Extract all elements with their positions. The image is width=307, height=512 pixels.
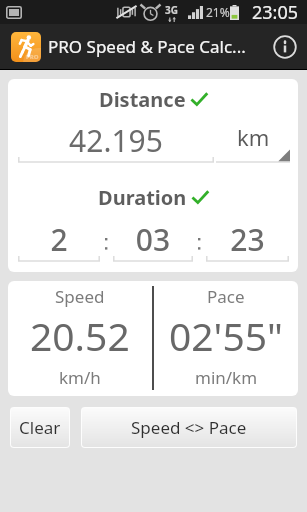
staticText: Speed: [55, 285, 105, 308]
button[interactable]: 42.195: [18, 123, 214, 163]
staticText: 20.52: [30, 309, 130, 362]
staticText: PRO: [26, 53, 39, 61]
staticText: Pace: [207, 285, 245, 308]
staticText: 23:05: [252, 0, 299, 24]
staticText: Clear: [19, 416, 61, 439]
button[interactable]: Speed <> Pace: [82, 408, 296, 447]
staticText: km: [237, 122, 270, 152]
staticText: Distance: [99, 86, 186, 113]
button[interactable]: Info: [262, 24, 307, 69]
staticText: 3G: [165, 3, 178, 17]
button[interactable]: 03: [113, 222, 193, 262]
staticText: 42.195: [18, 120, 214, 154]
button[interactable]: km: [216, 123, 290, 163]
staticText: PRO Speed & Pace Calc...: [48, 35, 246, 58]
staticText: 03: [113, 219, 193, 253]
button[interactable]: 23: [206, 222, 289, 262]
staticText: Duration: [98, 184, 187, 211]
staticText: Speed <> Pace: [131, 416, 247, 439]
staticText: 2: [18, 219, 100, 253]
button[interactable]: 2: [18, 222, 100, 262]
button[interactable]: Speed: [8, 281, 152, 396]
button[interactable]: Clear: [11, 408, 69, 447]
staticText: 02'55": [169, 309, 283, 362]
staticText: min/km: [195, 366, 258, 389]
button[interactable]: Pace: [154, 281, 298, 396]
staticText: 21%: [206, 4, 230, 20]
staticText: 23: [206, 219, 289, 253]
staticText: km/h: [59, 366, 101, 389]
